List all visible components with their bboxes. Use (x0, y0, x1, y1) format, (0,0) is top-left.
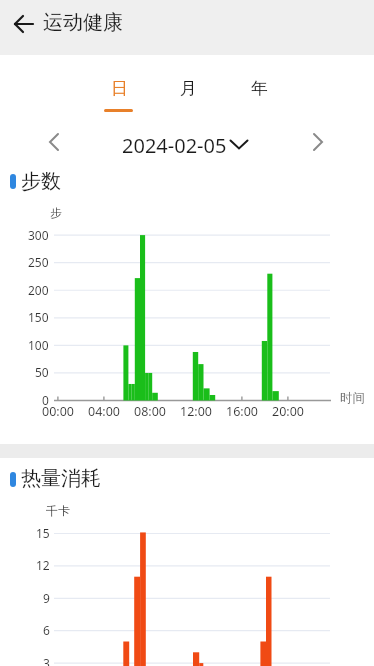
staticText: 300 (28, 227, 49, 243)
staticText: 6 (43, 622, 50, 638)
staticText: 50 (35, 364, 49, 380)
button[interactable] (302, 126, 334, 158)
staticText: 步 (50, 206, 62, 220)
staticText: 日 (111, 78, 128, 99)
staticText: 20:00 (272, 403, 304, 419)
staticText: 08:00 (134, 403, 166, 419)
staticText: 3 (43, 655, 50, 666)
staticText: 2024-02-05 (122, 132, 227, 156)
staticText: 100 (28, 337, 49, 353)
staticText: 250 (28, 254, 49, 270)
button[interactable]: 月 (166, 70, 210, 106)
staticText: 0 (42, 392, 49, 408)
button[interactable]: 日 (97, 70, 141, 106)
button[interactable] (6, 10, 44, 40)
staticText: 150 (28, 309, 49, 325)
staticText: 热量消耗 (21, 466, 101, 491)
staticText: 千卡 (46, 503, 70, 518)
staticText: 15 (36, 525, 50, 541)
staticText: 12:00 (180, 403, 212, 419)
staticText: 12 (36, 557, 50, 573)
button[interactable]: 2024-02-05 (122, 132, 227, 156)
staticText: 04:00 (88, 403, 120, 419)
staticText: 00:00 (42, 403, 74, 419)
staticText: 9 (43, 590, 50, 606)
button[interactable]: 年 (237, 70, 281, 106)
staticText: 年 (251, 78, 268, 99)
staticText: 时间 (340, 390, 365, 406)
button[interactable] (38, 126, 70, 158)
staticText: 运动健康 (43, 10, 123, 35)
staticText: 200 (28, 282, 49, 298)
staticText: 16:00 (226, 403, 258, 419)
staticText: 步数 (21, 169, 61, 194)
staticText: 月 (180, 78, 197, 99)
